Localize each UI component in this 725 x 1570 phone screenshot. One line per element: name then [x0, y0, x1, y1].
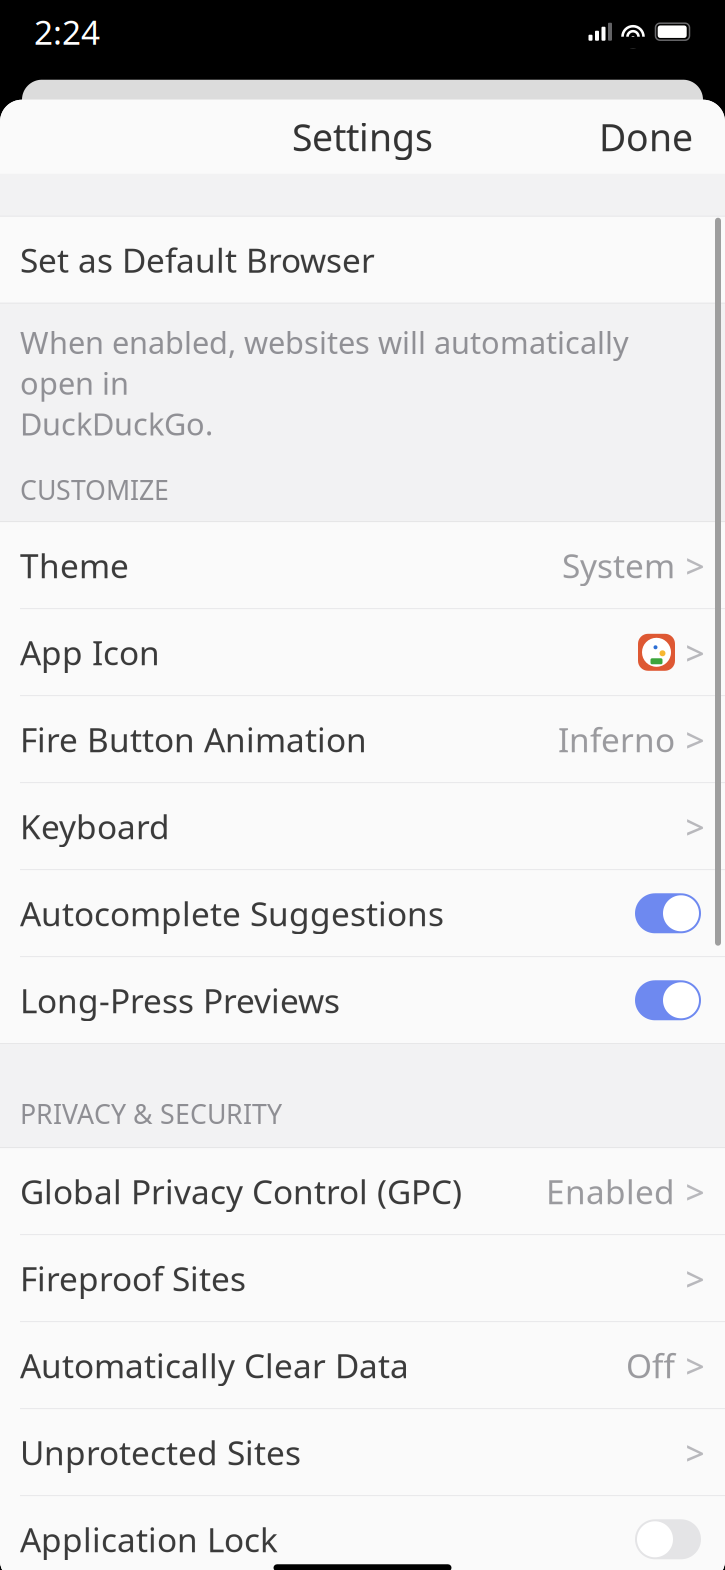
staticText: CUSTOMIZE	[20, 472, 169, 507]
button[interactable]: Autocomplete Suggestions	[0, 870, 725, 956]
staticText: >	[685, 1169, 704, 1213]
button[interactable]: Theme	[0, 522, 725, 608]
staticText: Keyboard	[20, 804, 170, 848]
button[interactable]: Application Lock	[0, 1496, 725, 1570]
staticText: Set as Default Browser	[20, 238, 375, 282]
staticText: Application Lock	[20, 1517, 278, 1561]
button[interactable]: Set as Default Browser	[0, 217, 725, 303]
staticText: Off	[626, 1343, 675, 1387]
button[interactable]: App Icon	[0, 609, 725, 695]
button[interactable]: Unprotected Sites	[0, 1409, 725, 1495]
staticText: Inferno	[558, 717, 675, 761]
staticText: Automatically Clear Data	[20, 1343, 409, 1387]
staticText: Fire Button Animation	[20, 717, 367, 761]
staticText: Unprotected Sites	[20, 1430, 301, 1474]
button[interactable]: Done	[579, 100, 713, 173]
staticText: >	[685, 1430, 704, 1474]
staticText: Theme	[20, 543, 129, 587]
staticText: App Icon	[20, 630, 160, 674]
staticText: >	[685, 1343, 704, 1387]
button[interactable]: Long-Press Previews	[0, 957, 725, 1043]
button[interactable]: Fireproof Sites	[0, 1235, 725, 1321]
staticText: >	[685, 630, 704, 674]
staticText: >	[685, 804, 704, 848]
staticText: DuckDuckGo.	[20, 403, 213, 444]
staticText: Enabled	[546, 1169, 675, 1213]
staticText: 2:24	[34, 10, 100, 54]
staticText: >	[685, 717, 704, 761]
button[interactable]: Automatically Clear Data	[0, 1322, 725, 1408]
staticText: Autocomplete Suggestions	[20, 891, 444, 935]
staticText: Long-Press Previews	[20, 978, 340, 1022]
staticText: PRIVACY & SECURITY	[20, 1096, 282, 1131]
button[interactable]: Keyboard	[0, 783, 725, 869]
staticText: >	[685, 543, 704, 587]
button[interactable]: Fire Button Animation	[0, 696, 725, 782]
staticText: >	[685, 1256, 704, 1300]
staticText: Fireproof Sites	[20, 1256, 246, 1300]
staticText: Global Privacy Control (GPC)	[20, 1169, 462, 1213]
staticText: Settings	[292, 112, 433, 161]
staticText: When enabled, websites will automaticall…	[20, 322, 629, 403]
staticText: System	[562, 543, 675, 587]
staticText: Done	[599, 112, 693, 161]
button[interactable]: Global Privacy Control (GPC)	[0, 1148, 725, 1234]
